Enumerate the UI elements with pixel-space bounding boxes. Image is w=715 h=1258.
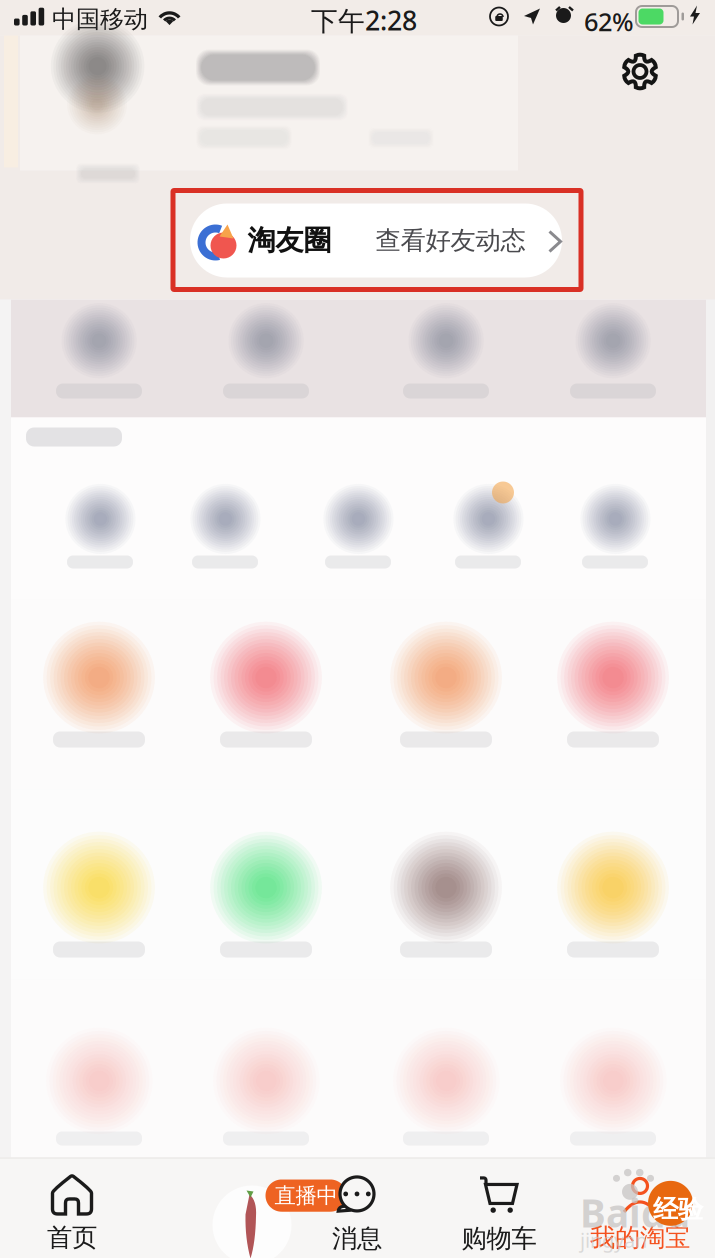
staticText: 消息	[332, 1223, 382, 1254]
button[interactable]: 首页	[7, 1169, 137, 1257]
staticText: jingyan	[580, 1227, 647, 1253]
staticText: 下午2:28	[311, 2, 417, 38]
staticText: 直播中	[274, 1182, 337, 1209]
staticText: 购物车	[461, 1223, 536, 1254]
staticText: 淘友圈	[247, 223, 331, 258]
button[interactable]: 设置	[603, 34, 677, 108]
staticText: 中国移动	[52, 4, 148, 34]
staticText: 经验	[653, 1194, 703, 1225]
button[interactable]: 购物车	[434, 1169, 564, 1257]
staticText: 首页	[47, 1222, 97, 1253]
button[interactable]: 消息	[292, 1169, 422, 1257]
button[interactable]: 直播	[177, 1157, 329, 1258]
staticText: Baidu	[580, 1187, 690, 1238]
staticText: 62%	[584, 4, 634, 38]
button[interactable]: 我的淘宝	[575, 1169, 705, 1257]
staticText: 查看好友动态	[375, 225, 525, 256]
button[interactable]: 淘友圈	[190, 203, 562, 277]
staticText: 我的淘宝	[590, 1222, 690, 1253]
